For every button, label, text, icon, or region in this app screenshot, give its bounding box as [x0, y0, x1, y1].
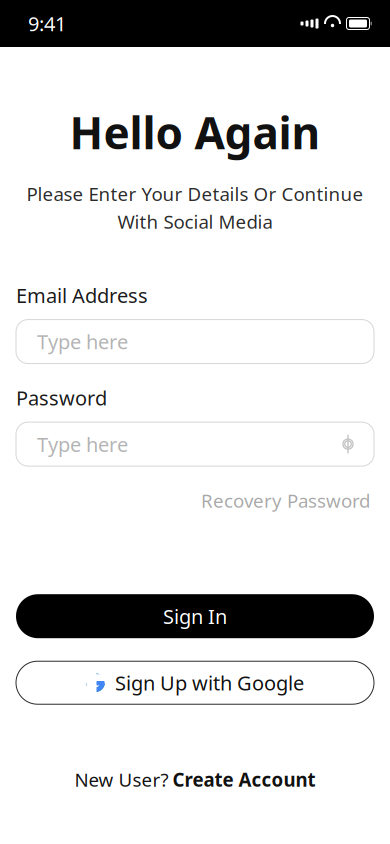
staticText: With Social Media — [117, 209, 272, 234]
button[interactable]: Type here — [16, 320, 374, 364]
staticText: Hello Again — [69, 103, 320, 161]
staticText: Recovery Password — [201, 488, 370, 513]
staticText: 9:41 — [28, 10, 66, 37]
staticText: Sign Up with Google — [115, 669, 304, 696]
staticText: Email Address — [16, 282, 148, 309]
staticText: Type here — [37, 431, 128, 457]
staticText: Type here — [37, 328, 128, 355]
staticText: New User? — [74, 767, 168, 792]
staticText: Please Enter Your Details Or Continue — [26, 181, 363, 206]
staticText: Create Account — [172, 767, 315, 792]
staticText: Password — [16, 385, 107, 411]
button[interactable]: Type here — [16, 422, 374, 466]
button[interactable]: Sign In — [16, 594, 374, 638]
button[interactable]: New User? — [64, 761, 325, 798]
staticText: Sign In — [163, 603, 227, 629]
button[interactable]: Sign Up with Google — [16, 661, 374, 704]
button[interactable]: Recovery Password — [201, 484, 370, 517]
